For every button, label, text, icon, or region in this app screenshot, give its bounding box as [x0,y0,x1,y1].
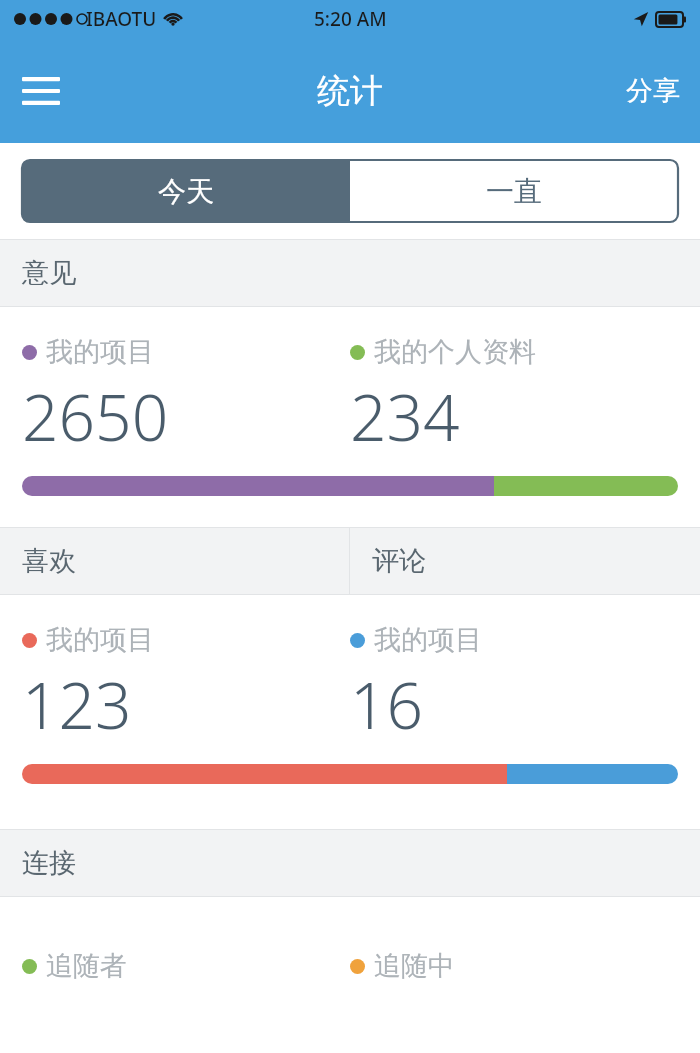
staticText: 16 [350,661,424,748]
staticText: 我的项目 [374,623,482,657]
button[interactable]: 分享 [606,62,700,120]
staticText: 5:20 AM [314,6,387,32]
staticText: 连接 [22,846,76,880]
staticText: 分享 [626,74,680,108]
button[interactable]: 一直 [350,160,678,222]
staticText: 统计 [317,70,383,112]
staticText: IBAOTU [86,6,157,32]
staticText: 一直 [486,174,542,209]
staticText: 我的个人资料 [374,335,536,369]
staticText: 234 [350,373,460,460]
staticText: 评论 [372,544,426,578]
staticText: 我的项目 [46,623,154,657]
staticText: 今天 [158,174,214,209]
staticText: 2650 [22,373,169,460]
staticText: 追随中 [374,949,455,983]
staticText: 我的项目 [46,335,154,369]
staticText: 喜欢 [22,544,76,578]
staticText: 123 [22,661,132,748]
button[interactable]: 今天 [22,160,350,222]
staticText: 意见 [22,256,76,290]
button[interactable]: Menu [14,64,68,118]
staticText: 追随者 [46,949,127,983]
